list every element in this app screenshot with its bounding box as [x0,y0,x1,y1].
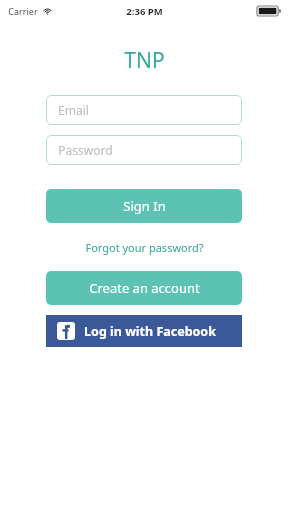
staticText: Log in with Facebook [84,323,216,340]
button[interactable]: Sign In [46,189,242,223]
staticText: Email [58,102,89,118]
staticText: Password [58,142,113,158]
button[interactable]: Email [46,95,242,125]
staticText: Create an account [89,279,200,297]
staticText: Forgot your password? [85,240,204,255]
button[interactable]: Log in with Facebook [46,315,242,347]
button[interactable]: Password [46,135,242,165]
staticText: Carrier [8,5,38,17]
button[interactable]: Create an account [46,271,242,305]
button[interactable]: Forgot your password? [85,240,204,255]
staticText: TNP [124,46,165,75]
staticText: 2:36 PM [126,5,163,18]
staticText: Sign In [123,197,166,215]
